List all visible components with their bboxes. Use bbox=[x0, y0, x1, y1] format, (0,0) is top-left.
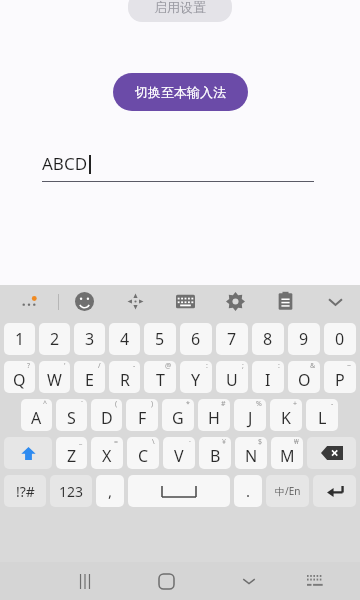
staticText: 6 bbox=[191, 328, 201, 350]
staticText: G bbox=[172, 407, 184, 429]
staticText: = bbox=[114, 437, 119, 447]
button[interactable]: 6 bbox=[180, 323, 212, 355]
button[interactable]: ; bbox=[216, 361, 248, 393]
button[interactable]: ^ bbox=[21, 399, 52, 431]
staticText: 4 bbox=[120, 328, 130, 350]
button[interactable]: ? bbox=[4, 361, 35, 393]
button[interactable]: \ bbox=[127, 437, 159, 469]
staticText: Y bbox=[191, 369, 201, 391]
button[interactable]: ¥ bbox=[199, 437, 231, 469]
staticText: * bbox=[186, 399, 190, 409]
staticText: ) bbox=[151, 399, 154, 409]
staticText: J bbox=[248, 407, 253, 429]
button[interactable]: Space bbox=[128, 475, 230, 507]
staticText: C bbox=[138, 445, 149, 467]
button[interactable]: _ bbox=[56, 437, 87, 469]
staticText: - bbox=[331, 399, 334, 409]
button[interactable]: ( bbox=[91, 399, 122, 431]
button[interactable]: & bbox=[288, 361, 320, 393]
staticText: !?# bbox=[16, 482, 35, 501]
staticText: & bbox=[310, 361, 316, 371]
button[interactable]: 9 bbox=[288, 323, 320, 355]
staticText: _ bbox=[79, 437, 83, 447]
button[interactable]: ' bbox=[39, 361, 70, 393]
button[interactable]: 中/En bbox=[266, 475, 309, 507]
button[interactable]: % bbox=[234, 399, 266, 431]
button[interactable]: 0 bbox=[324, 323, 356, 355]
button[interactable]: ` bbox=[56, 399, 87, 431]
staticText: A bbox=[31, 407, 42, 429]
button[interactable]: Emoji bbox=[59, 285, 110, 318]
button[interactable]: 4 bbox=[109, 323, 140, 355]
staticText: ¥ bbox=[222, 437, 227, 447]
button[interactable]: !?# bbox=[4, 475, 46, 507]
button[interactable]: · bbox=[163, 437, 195, 469]
staticText: 启用设置 bbox=[154, 0, 206, 15]
staticText: 7 bbox=[227, 328, 237, 350]
button[interactable]: , bbox=[96, 475, 124, 507]
staticText: I bbox=[265, 369, 271, 391]
staticText: ~ bbox=[347, 361, 352, 371]
staticText: B bbox=[210, 445, 221, 467]
button[interactable]: ₩ bbox=[271, 437, 303, 469]
staticText: , bbox=[108, 481, 113, 501]
staticText: W bbox=[47, 369, 62, 391]
staticText: H bbox=[208, 407, 220, 429]
button[interactable]: ) bbox=[126, 399, 158, 431]
button[interactable]: ~ bbox=[324, 361, 356, 393]
button[interactable]: $ bbox=[235, 437, 267, 469]
staticText: + bbox=[293, 399, 298, 409]
staticText: . bbox=[246, 481, 251, 501]
button[interactable]: Hide keyboard bbox=[310, 285, 360, 318]
button[interactable]: 3 bbox=[74, 323, 105, 355]
button[interactable]: 切换至本输入法 bbox=[113, 73, 248, 111]
staticText: 5 bbox=[155, 328, 165, 350]
button[interactable]: Hide keyboard bbox=[222, 562, 275, 600]
button[interactable]: = bbox=[91, 437, 123, 469]
button[interactable]: Move cursor bbox=[110, 285, 160, 318]
button[interactable]: - bbox=[109, 361, 140, 393]
button[interactable]: / bbox=[74, 361, 105, 393]
staticText: Q bbox=[13, 369, 26, 391]
button[interactable]: More bbox=[0, 285, 58, 318]
button[interactable]: 启用设置 bbox=[128, 0, 232, 22]
staticText: V bbox=[174, 445, 184, 467]
button[interactable]: . bbox=[234, 475, 262, 507]
button[interactable]: Settings bbox=[210, 285, 260, 318]
button[interactable]: : bbox=[180, 361, 212, 393]
staticText: L bbox=[318, 407, 327, 429]
staticText: X bbox=[102, 445, 112, 467]
staticText: P bbox=[335, 369, 345, 391]
button[interactable]: Keyboard layout bbox=[160, 285, 210, 318]
button[interactable]: Recents bbox=[58, 562, 111, 600]
button[interactable]: : bbox=[252, 361, 284, 393]
staticText: : bbox=[278, 361, 280, 371]
button[interactable]: + bbox=[270, 399, 302, 431]
staticText: ? bbox=[27, 361, 31, 371]
button[interactable]: Shift bbox=[4, 437, 52, 469]
button[interactable]: 7 bbox=[216, 323, 248, 355]
staticText: T bbox=[156, 369, 165, 391]
staticText: ` bbox=[81, 399, 83, 409]
button[interactable]: Home bbox=[140, 562, 193, 600]
staticText: ABCD bbox=[42, 152, 88, 175]
staticText: ₩ bbox=[294, 437, 299, 447]
button[interactable]: Switch input method bbox=[288, 562, 341, 600]
button[interactable]: * bbox=[162, 399, 194, 431]
button[interactable]: 123 bbox=[50, 475, 92, 507]
button[interactable]: 1 bbox=[4, 323, 35, 355]
button[interactable]: 5 bbox=[144, 323, 176, 355]
staticText: ( bbox=[115, 399, 118, 409]
button[interactable]: ABCD bbox=[42, 152, 314, 182]
staticText: 切换至本输入法 bbox=[135, 84, 226, 100]
staticText: N bbox=[245, 445, 258, 467]
button[interactable]: - bbox=[306, 399, 338, 431]
button[interactable]: 2 bbox=[39, 323, 70, 355]
button[interactable]: Enter bbox=[313, 475, 356, 507]
staticText: \ bbox=[152, 437, 155, 447]
button[interactable]: Backspace bbox=[307, 437, 356, 469]
button[interactable]: Clipboard bbox=[260, 285, 310, 318]
button[interactable]: # bbox=[198, 399, 230, 431]
button[interactable]: 8 bbox=[252, 323, 284, 355]
button[interactable]: @ bbox=[144, 361, 176, 393]
